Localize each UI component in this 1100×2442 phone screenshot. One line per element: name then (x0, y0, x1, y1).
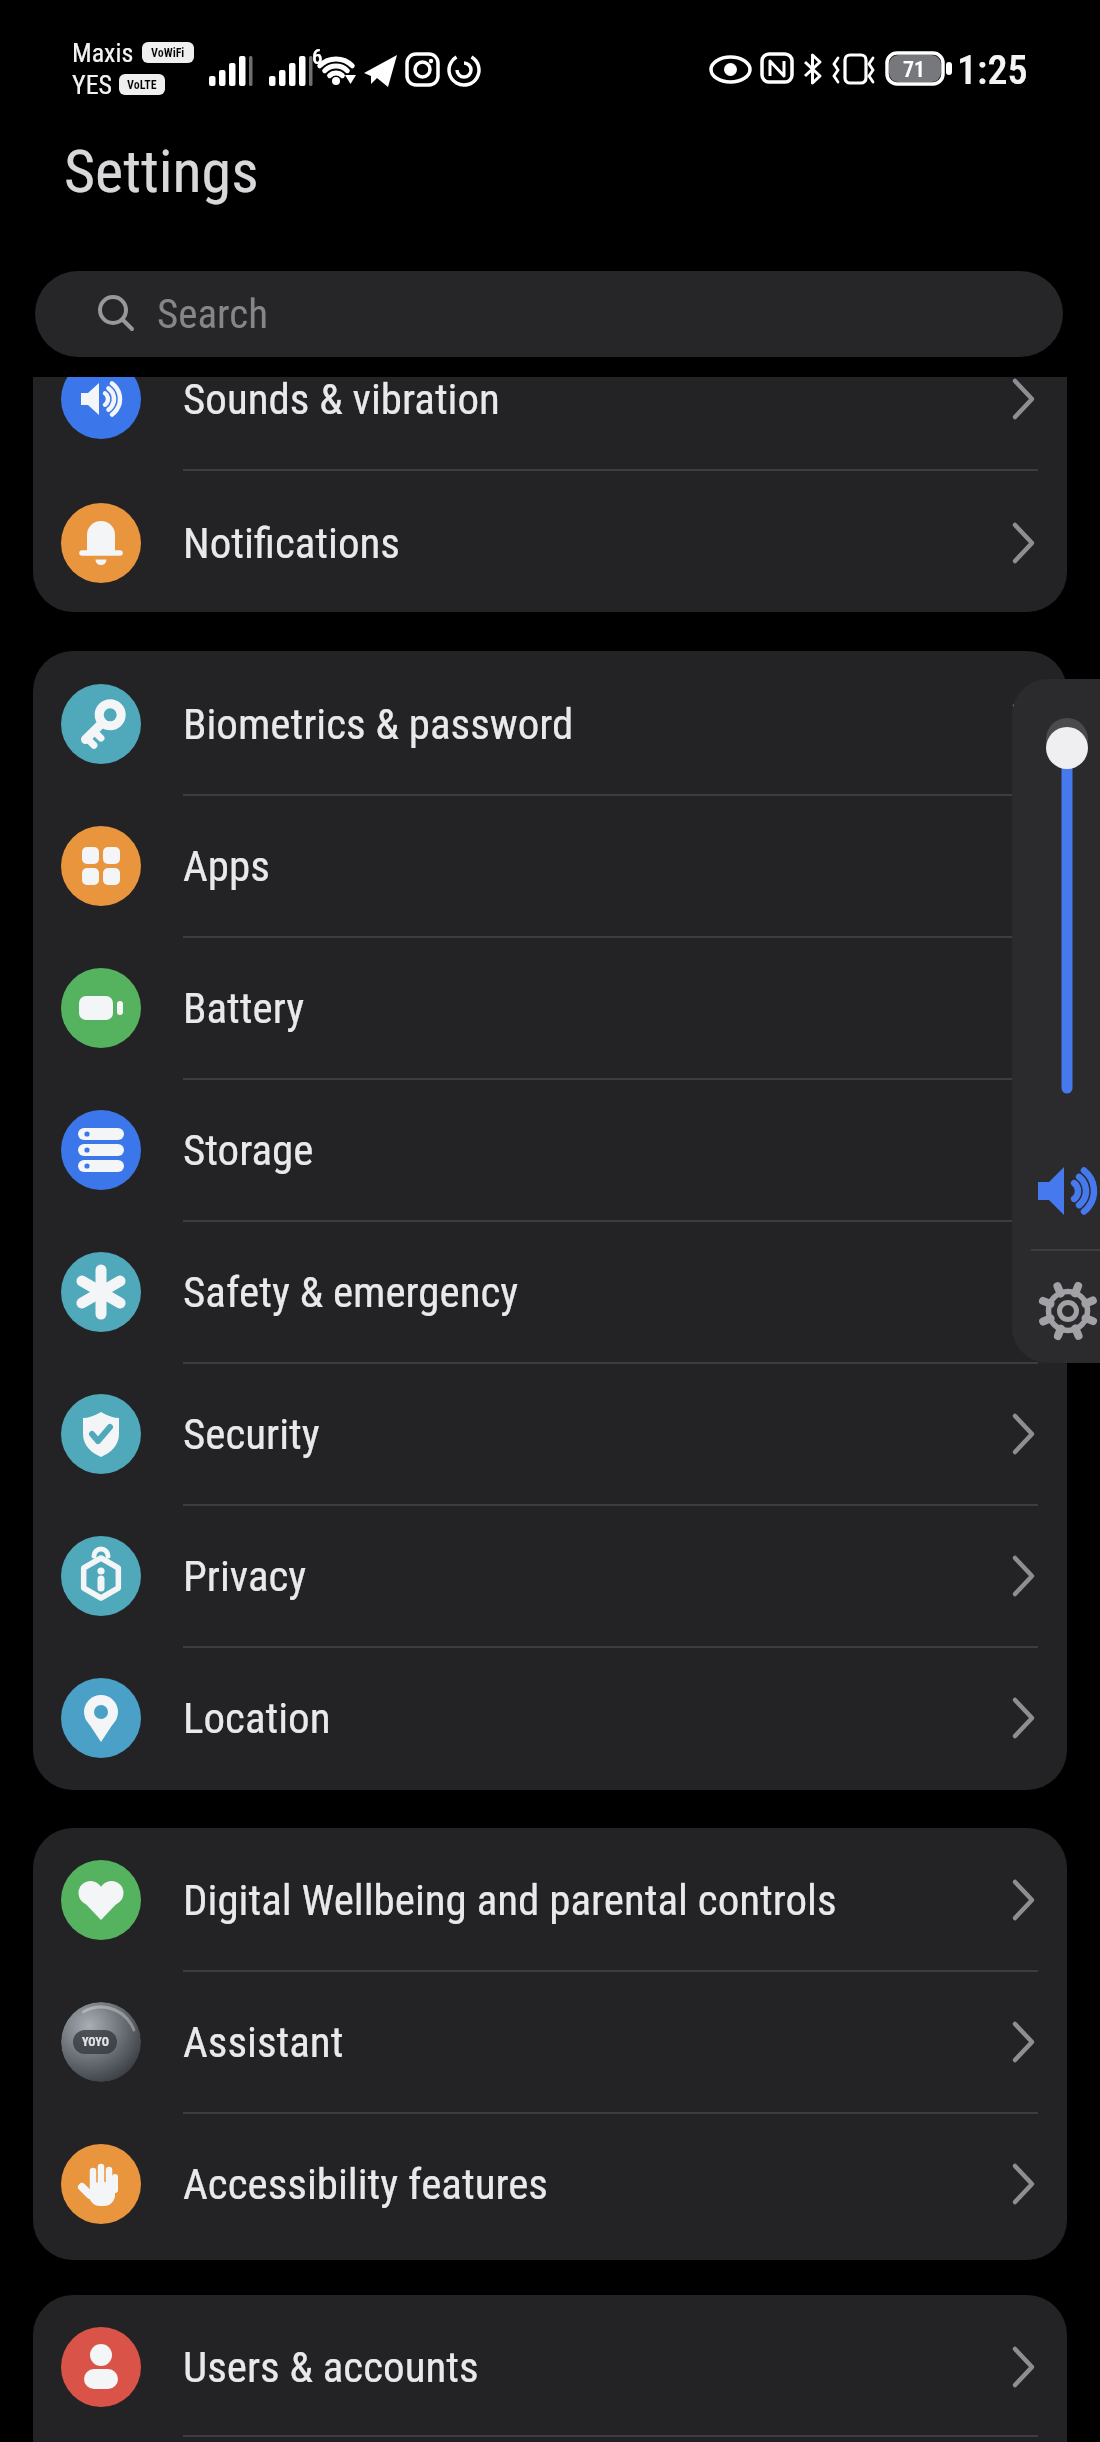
staticText: Maxis (72, 38, 134, 68)
staticText: Sounds & vibration (183, 377, 500, 424)
button[interactable]: Sounds & vibration (33, 377, 1067, 470)
staticText: Accessibility features (183, 2159, 548, 2209)
button[interactable]: Digital Wellbeing and parental controls (33, 1829, 1067, 1971)
button[interactable]: Storage (33, 1079, 1067, 1221)
staticText: Assistant (183, 2017, 344, 2067)
staticText: Users & accounts (183, 2342, 479, 2392)
staticText: Battery (183, 983, 305, 1033)
staticText: Location (183, 1693, 331, 1743)
button[interactable]: Biometrics & password (33, 653, 1067, 795)
staticText: Settings (64, 136, 259, 206)
staticText: Search (157, 290, 268, 338)
button[interactable]: Apps (33, 795, 1067, 937)
button[interactable]: Notifications (33, 472, 1067, 612)
staticText: Biometrics & password (183, 699, 574, 749)
staticText: Apps (183, 841, 270, 891)
button[interactable] (1032, 709, 1100, 1109)
staticText: Storage (183, 1125, 314, 1175)
button[interactable]: Users & accounts (33, 2296, 1067, 2438)
staticText: Digital Wellbeing and parental controls (183, 1875, 837, 1925)
button[interactable] (1024, 1139, 1100, 1239)
staticText: YES (72, 70, 113, 100)
button[interactable] (1024, 1263, 1100, 1359)
button[interactable]: Location (33, 1647, 1067, 1789)
staticText: 1:25 (957, 47, 1028, 94)
button[interactable]: Accessibility features (33, 2113, 1067, 2255)
button[interactable]: Search (35, 271, 1063, 357)
staticText: 71 (903, 57, 926, 83)
staticText: VoWiFi (151, 46, 185, 60)
button[interactable]: Battery (33, 937, 1067, 1079)
staticText: YOYO (82, 2035, 109, 2049)
staticText: Privacy (183, 1551, 307, 1601)
button[interactable]: YOYO (33, 1971, 1067, 2113)
staticText: VoLTE (127, 78, 157, 92)
staticText: 6 (312, 45, 323, 70)
button[interactable]: Safety & emergency (33, 1221, 1067, 1363)
staticText: Notifications (183, 518, 400, 568)
button[interactable]: Security (33, 1363, 1067, 1505)
staticText: Security (183, 1409, 320, 1459)
staticText: Safety & emergency (183, 1267, 519, 1317)
button[interactable]: Privacy (33, 1505, 1067, 1647)
